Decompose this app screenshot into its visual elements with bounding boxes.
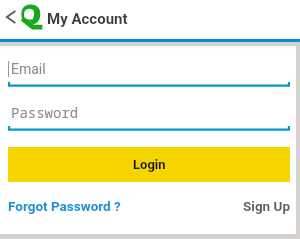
button[interactable]: Login xyxy=(8,147,290,182)
staticText: My Account xyxy=(47,10,128,28)
staticText: Email xyxy=(11,61,46,77)
staticText: Login xyxy=(133,157,166,172)
button[interactable]: Email xyxy=(8,61,290,87)
staticText: Forgot Password ? xyxy=(8,198,121,214)
button[interactable]: Forgot Password ? xyxy=(8,198,121,214)
button[interactable]: Sign Up xyxy=(243,198,290,214)
button[interactable]: Password xyxy=(8,103,290,131)
staticText: Password xyxy=(11,103,79,122)
button[interactable]: Back xyxy=(2,5,20,35)
staticText: Sign Up xyxy=(243,198,290,214)
